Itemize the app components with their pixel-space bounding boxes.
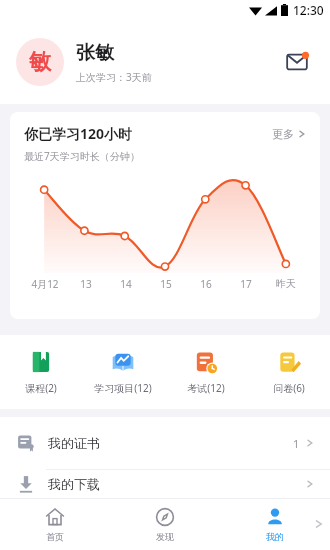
button[interactable]: 敏 [16, 38, 64, 86]
button[interactable]: 我的下载 [0, 470, 330, 498]
staticText: 4月12 [31, 277, 59, 291]
staticText: 首页 [46, 531, 64, 542]
staticText: 学习项目(12) [94, 381, 152, 395]
button[interactable]: 课程(2) [0, 347, 82, 397]
button[interactable]: 我的 [220, 498, 330, 550]
staticText: 昨天 [276, 277, 296, 290]
staticText: 1 [293, 436, 300, 451]
staticText: 17 [240, 277, 252, 291]
staticText: 15 [160, 277, 172, 291]
button[interactable]: 考试(12) [164, 347, 247, 397]
staticText: 我的 [266, 531, 284, 542]
staticText: 更多 [272, 127, 294, 141]
button[interactable]: 学习项目(12) [82, 347, 164, 397]
staticText: 问卷(6) [273, 381, 305, 395]
button[interactable]: 发现 [110, 498, 220, 550]
staticText: 发现 [156, 531, 174, 542]
staticText: 12:30 [293, 2, 324, 18]
staticText: 我的证书 [48, 435, 293, 451]
staticText: 最近7天学习时长（分钟） [24, 149, 140, 163]
staticText: 14 [120, 277, 132, 291]
button[interactable]: 你已学习120小时 [10, 112, 320, 319]
staticText: 13 [80, 277, 92, 291]
staticText: 考试(12) [187, 381, 225, 395]
staticText: 我的下载 [48, 476, 306, 492]
button[interactable]: 问卷(6) [247, 347, 330, 397]
button[interactable]: 我的证书 [0, 417, 330, 469]
staticText: 你已学习120小时 [24, 124, 272, 143]
staticText: 上次学习：3天前 [76, 70, 152, 84]
staticText: 16 [200, 277, 212, 291]
staticText: 敏 [29, 48, 51, 76]
staticText: 张敏 [76, 41, 114, 65]
button[interactable]: 首页 [0, 498, 110, 550]
staticText: 课程(2) [25, 381, 57, 395]
button[interactable]: Messages [280, 45, 314, 79]
